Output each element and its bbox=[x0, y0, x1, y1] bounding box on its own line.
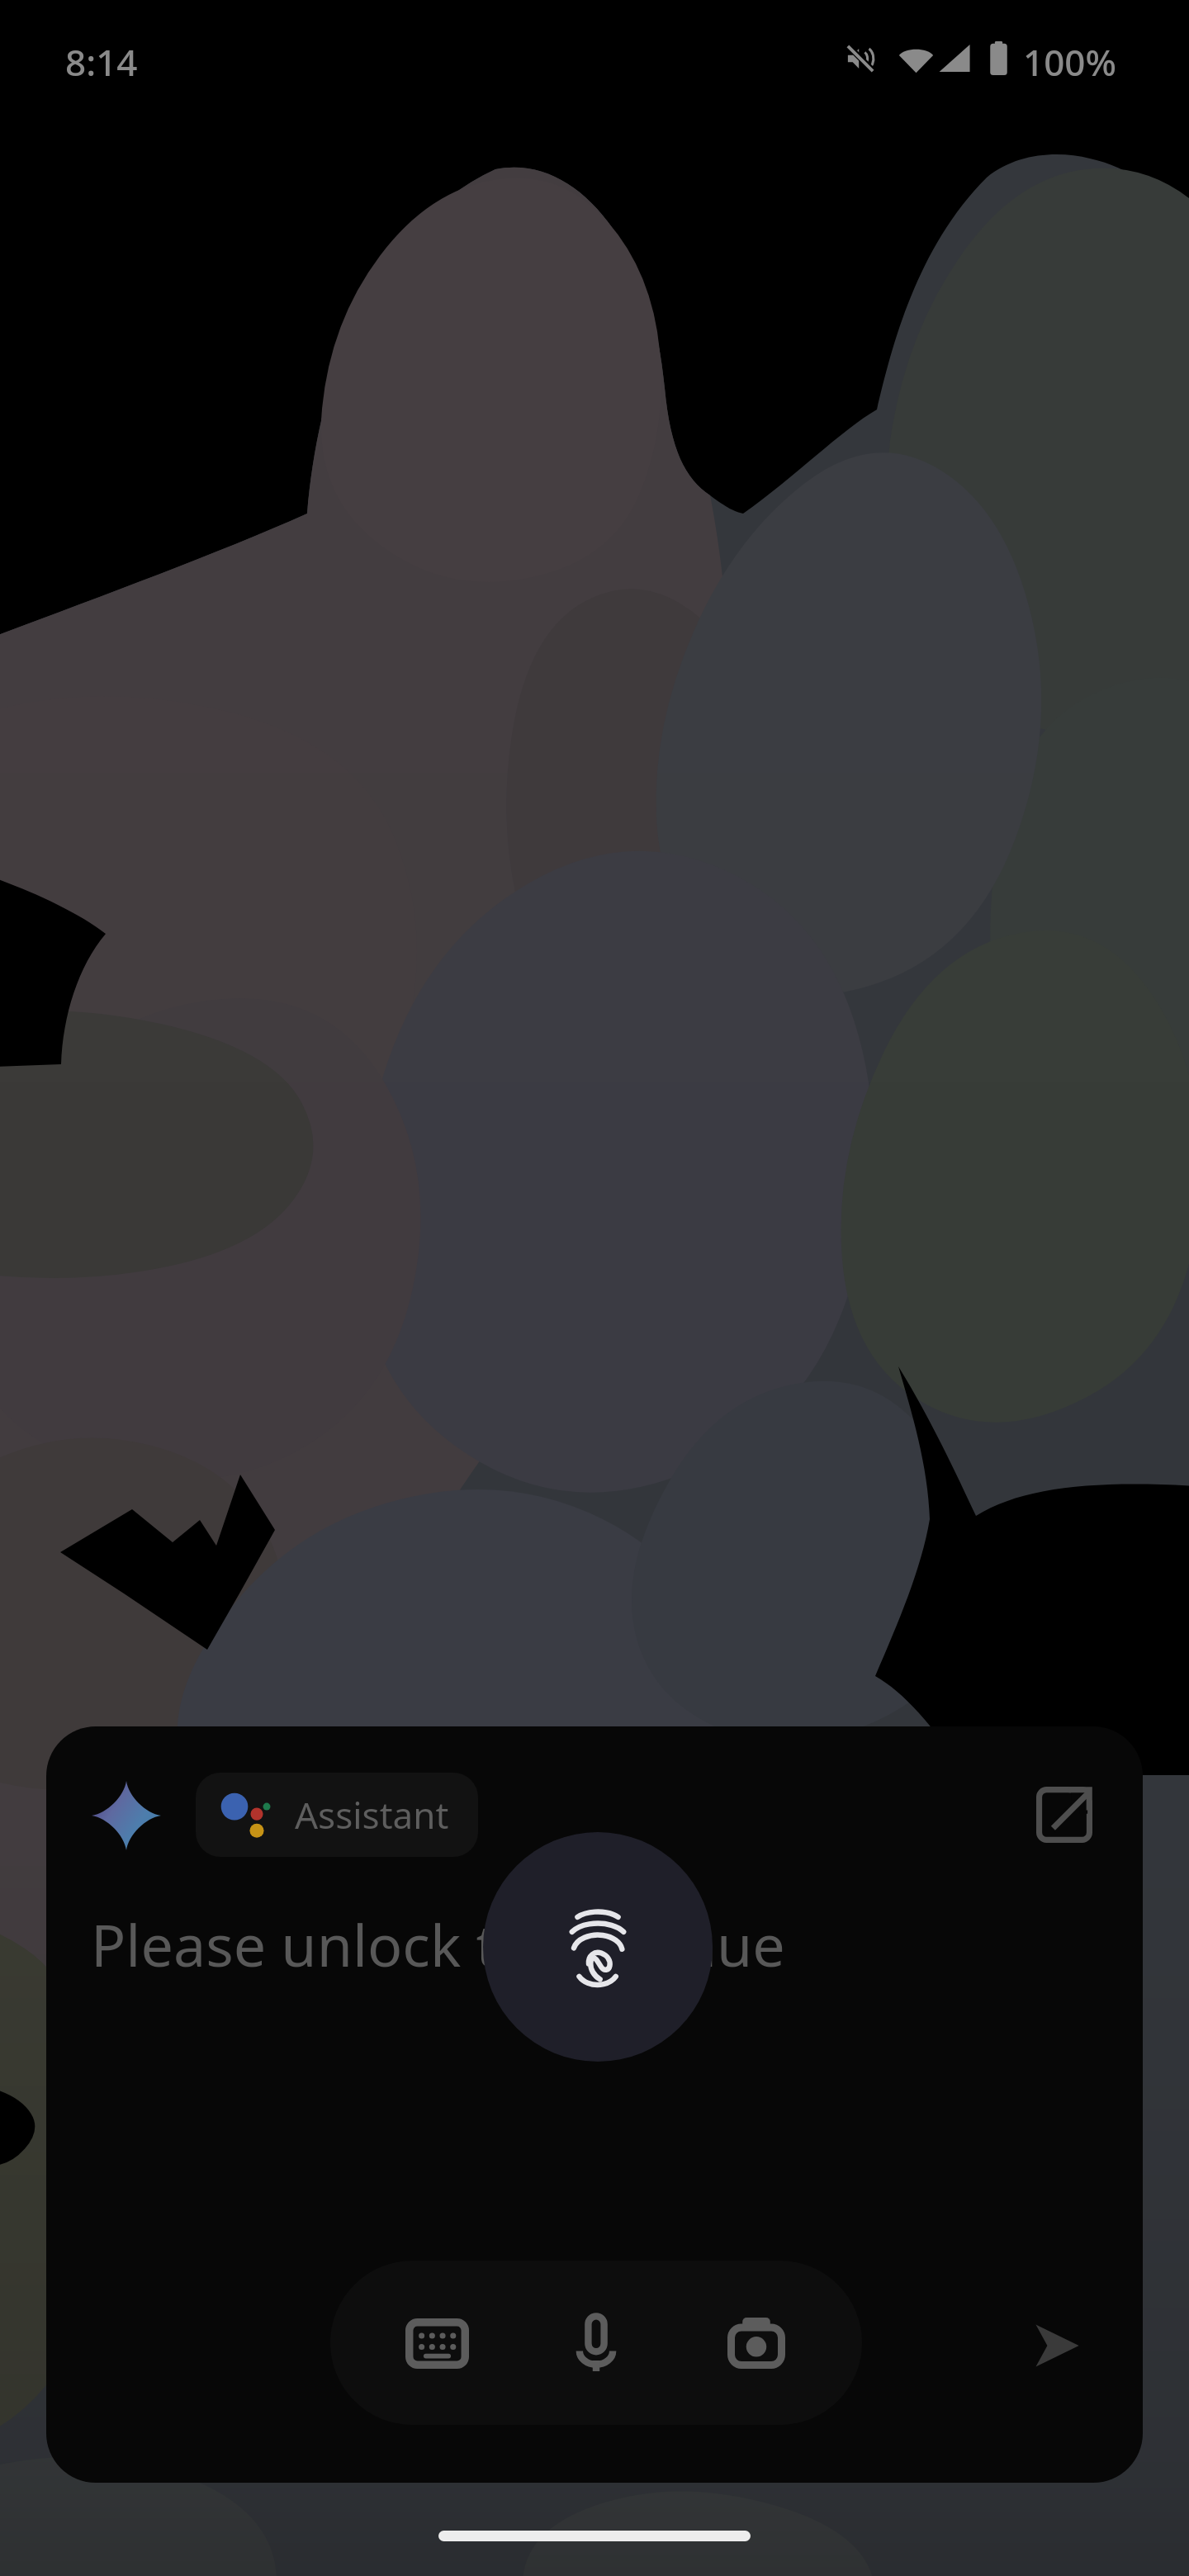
staticText: Please unlock to continue bbox=[91, 1905, 785, 1983]
button[interactable]: Keyboard bbox=[383, 2290, 490, 2397]
button[interactable]: Camera bbox=[703, 2290, 810, 2397]
staticText: 100% bbox=[1023, 37, 1116, 87]
button[interactable]: Microphone bbox=[542, 2290, 650, 2397]
button[interactable]: Assistant bbox=[196, 1773, 478, 1857]
button[interactable]: Open Assistant bbox=[1019, 1769, 1110, 1860]
button[interactable]: Send bbox=[1012, 2296, 1111, 2395]
button[interactable]: Fingerprint unlock bbox=[483, 1832, 713, 2062]
staticText: 8:14 bbox=[65, 37, 138, 87]
staticText: Assistant bbox=[295, 1790, 449, 1840]
